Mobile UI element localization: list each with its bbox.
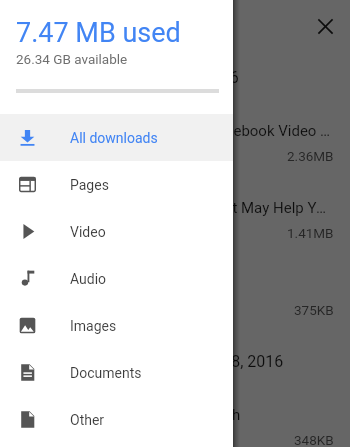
staticText: Six Simple Evening Routines That May Hel…: [16, 199, 334, 217]
button[interactable]: Other: [0, 396, 233, 443]
staticText: Other: [70, 412, 105, 428]
button[interactable]: Budget Planning Notes For March: [0, 388, 350, 447]
staticText: 348KB: [294, 432, 334, 447]
staticText: Tuesday last week, November 8, 2016: [16, 352, 284, 371]
button[interactable]: Here Is How You Can Save A Facebook Vide…: [0, 104, 350, 181]
button[interactable]: Documents: [0, 349, 233, 396]
button[interactable]: Close: [307, 8, 343, 44]
staticText: 1.41MB: [287, 225, 334, 241]
staticText: Documents: [70, 365, 142, 381]
staticText: Budget Planning Notes For March: [16, 406, 241, 424]
button[interactable]: Images: [0, 302, 233, 349]
staticText: Audio: [70, 271, 107, 287]
staticText: 26.34 GB available: [16, 51, 128, 67]
staticText: 375KB: [294, 302, 334, 318]
staticText: All downloads: [70, 130, 158, 146]
staticText: Morning Routine Checklist: [16, 276, 192, 294]
staticText: Video: [70, 224, 106, 240]
staticText: Images: [70, 318, 117, 334]
button[interactable]: Audio: [0, 255, 233, 302]
staticText: 2.36MB: [287, 148, 334, 164]
button[interactable]: Pages: [0, 161, 233, 208]
staticText: Pages: [70, 177, 109, 193]
button[interactable]: Video: [0, 208, 233, 255]
button[interactable]: All downloads: [0, 114, 233, 161]
button[interactable]: Six Simple Evening Routines That May Hel…: [0, 181, 350, 258]
staticText: Here Is How You Can Save A Facebook Vide…: [16, 122, 334, 140]
staticText: 7.47 MB used: [16, 17, 181, 49]
staticText: Last Friday, November 18, 2016: [16, 68, 239, 87]
button[interactable]: Morning Routine Checklist: [0, 258, 350, 335]
